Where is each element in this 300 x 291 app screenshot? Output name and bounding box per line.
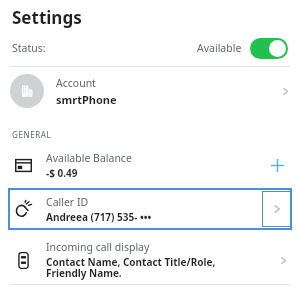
staticText: Andreea (717) 535- ••• (46, 210, 152, 224)
button[interactable]: Add balance (266, 154, 288, 176)
staticText: Settings (12, 6, 82, 29)
staticText: Incoming call display (46, 240, 150, 254)
button[interactable]: Caller ID (8, 188, 292, 230)
button[interactable]: Account (0, 67, 300, 115)
button[interactable]: Available Balance (0, 146, 300, 184)
staticText: Contact Name, Contact Title/Role, Friend… (46, 255, 216, 280)
staticText: Caller ID (46, 195, 89, 209)
staticText: GENERAL (12, 129, 52, 140)
staticText: -$ 0.49 (46, 166, 78, 180)
staticText: Account (56, 76, 96, 90)
staticText: Status: (12, 41, 46, 55)
button[interactable]: Open Caller ID (262, 191, 292, 227)
staticText: Available (197, 41, 242, 55)
button[interactable]: Incoming call display (0, 236, 300, 284)
button[interactable]: Status available toggle (250, 38, 288, 59)
staticText: Available Balance (46, 151, 132, 165)
staticText: smrtPhone (56, 92, 117, 107)
